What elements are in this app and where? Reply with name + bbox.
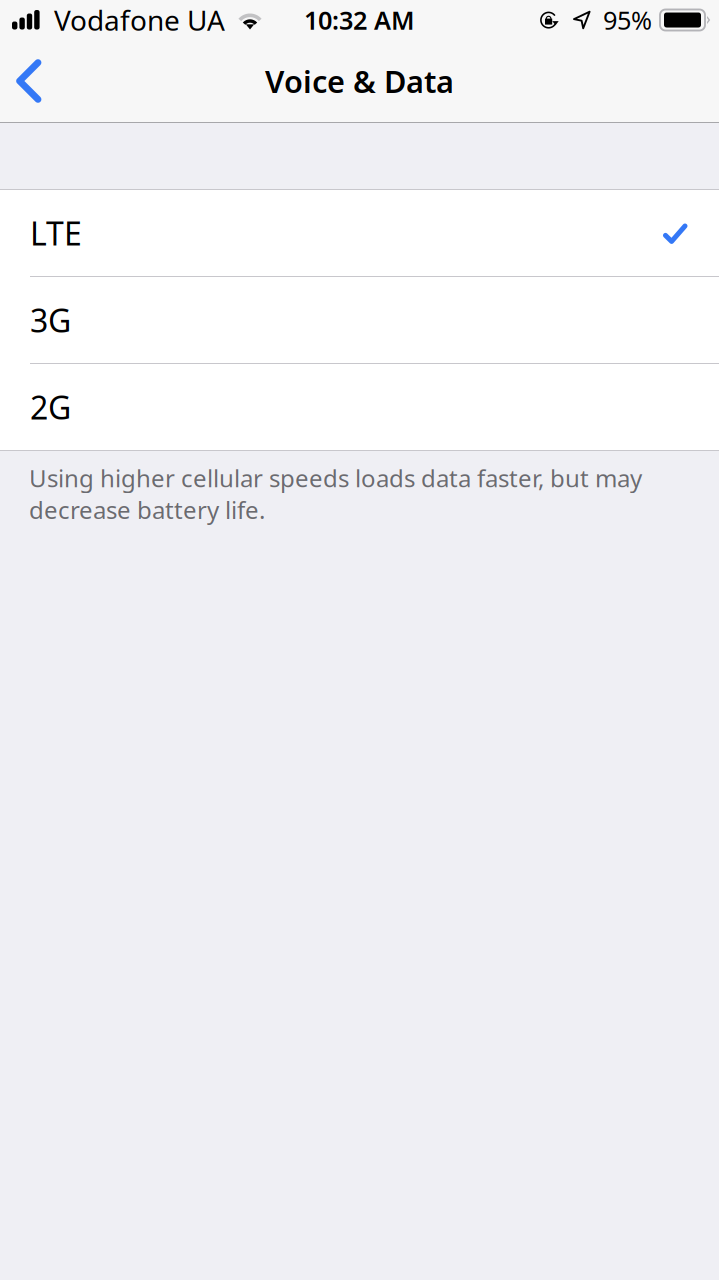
staticText: 2G <box>30 386 71 428</box>
staticText: 3G <box>30 299 71 341</box>
staticText: 95% <box>603 3 652 37</box>
staticText: Using higher cellular speeds loads data … <box>29 462 642 526</box>
staticText: 10:32 AM <box>304 3 415 37</box>
button[interactable]: 2G <box>0 364 719 450</box>
button[interactable]: 3G <box>0 277 719 363</box>
button[interactable]: Back <box>0 49 60 113</box>
staticText: LTE <box>30 212 82 254</box>
button[interactable]: LTE <box>0 190 719 276</box>
staticText: Voice & Data <box>265 61 454 101</box>
staticText: Vodafone UA <box>54 1 225 39</box>
